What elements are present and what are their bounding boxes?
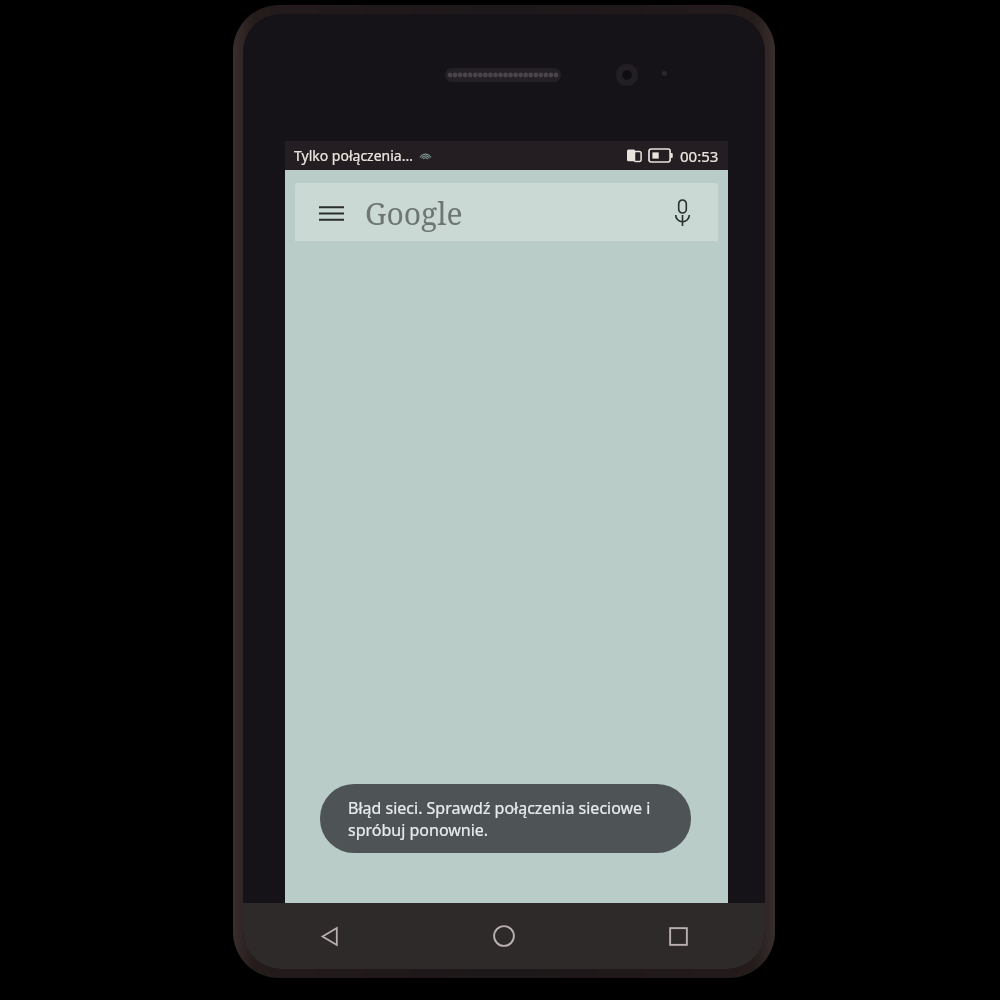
staticText: Google [365, 193, 463, 234]
staticText: Błąd sieci. Sprawdź połączenia sieciowe … [348, 797, 673, 841]
button[interactable]: Home [417, 903, 591, 969]
button[interactable]: Recent apps [591, 903, 765, 969]
button[interactable]: Menu [313, 195, 349, 231]
button[interactable]: Voice search [664, 195, 700, 231]
button[interactable]: Menu [295, 183, 718, 243]
staticText: Tylko połączenia... [294, 146, 413, 165]
button[interactable]: Back [243, 903, 417, 969]
staticText: 00:53 [680, 146, 719, 166]
